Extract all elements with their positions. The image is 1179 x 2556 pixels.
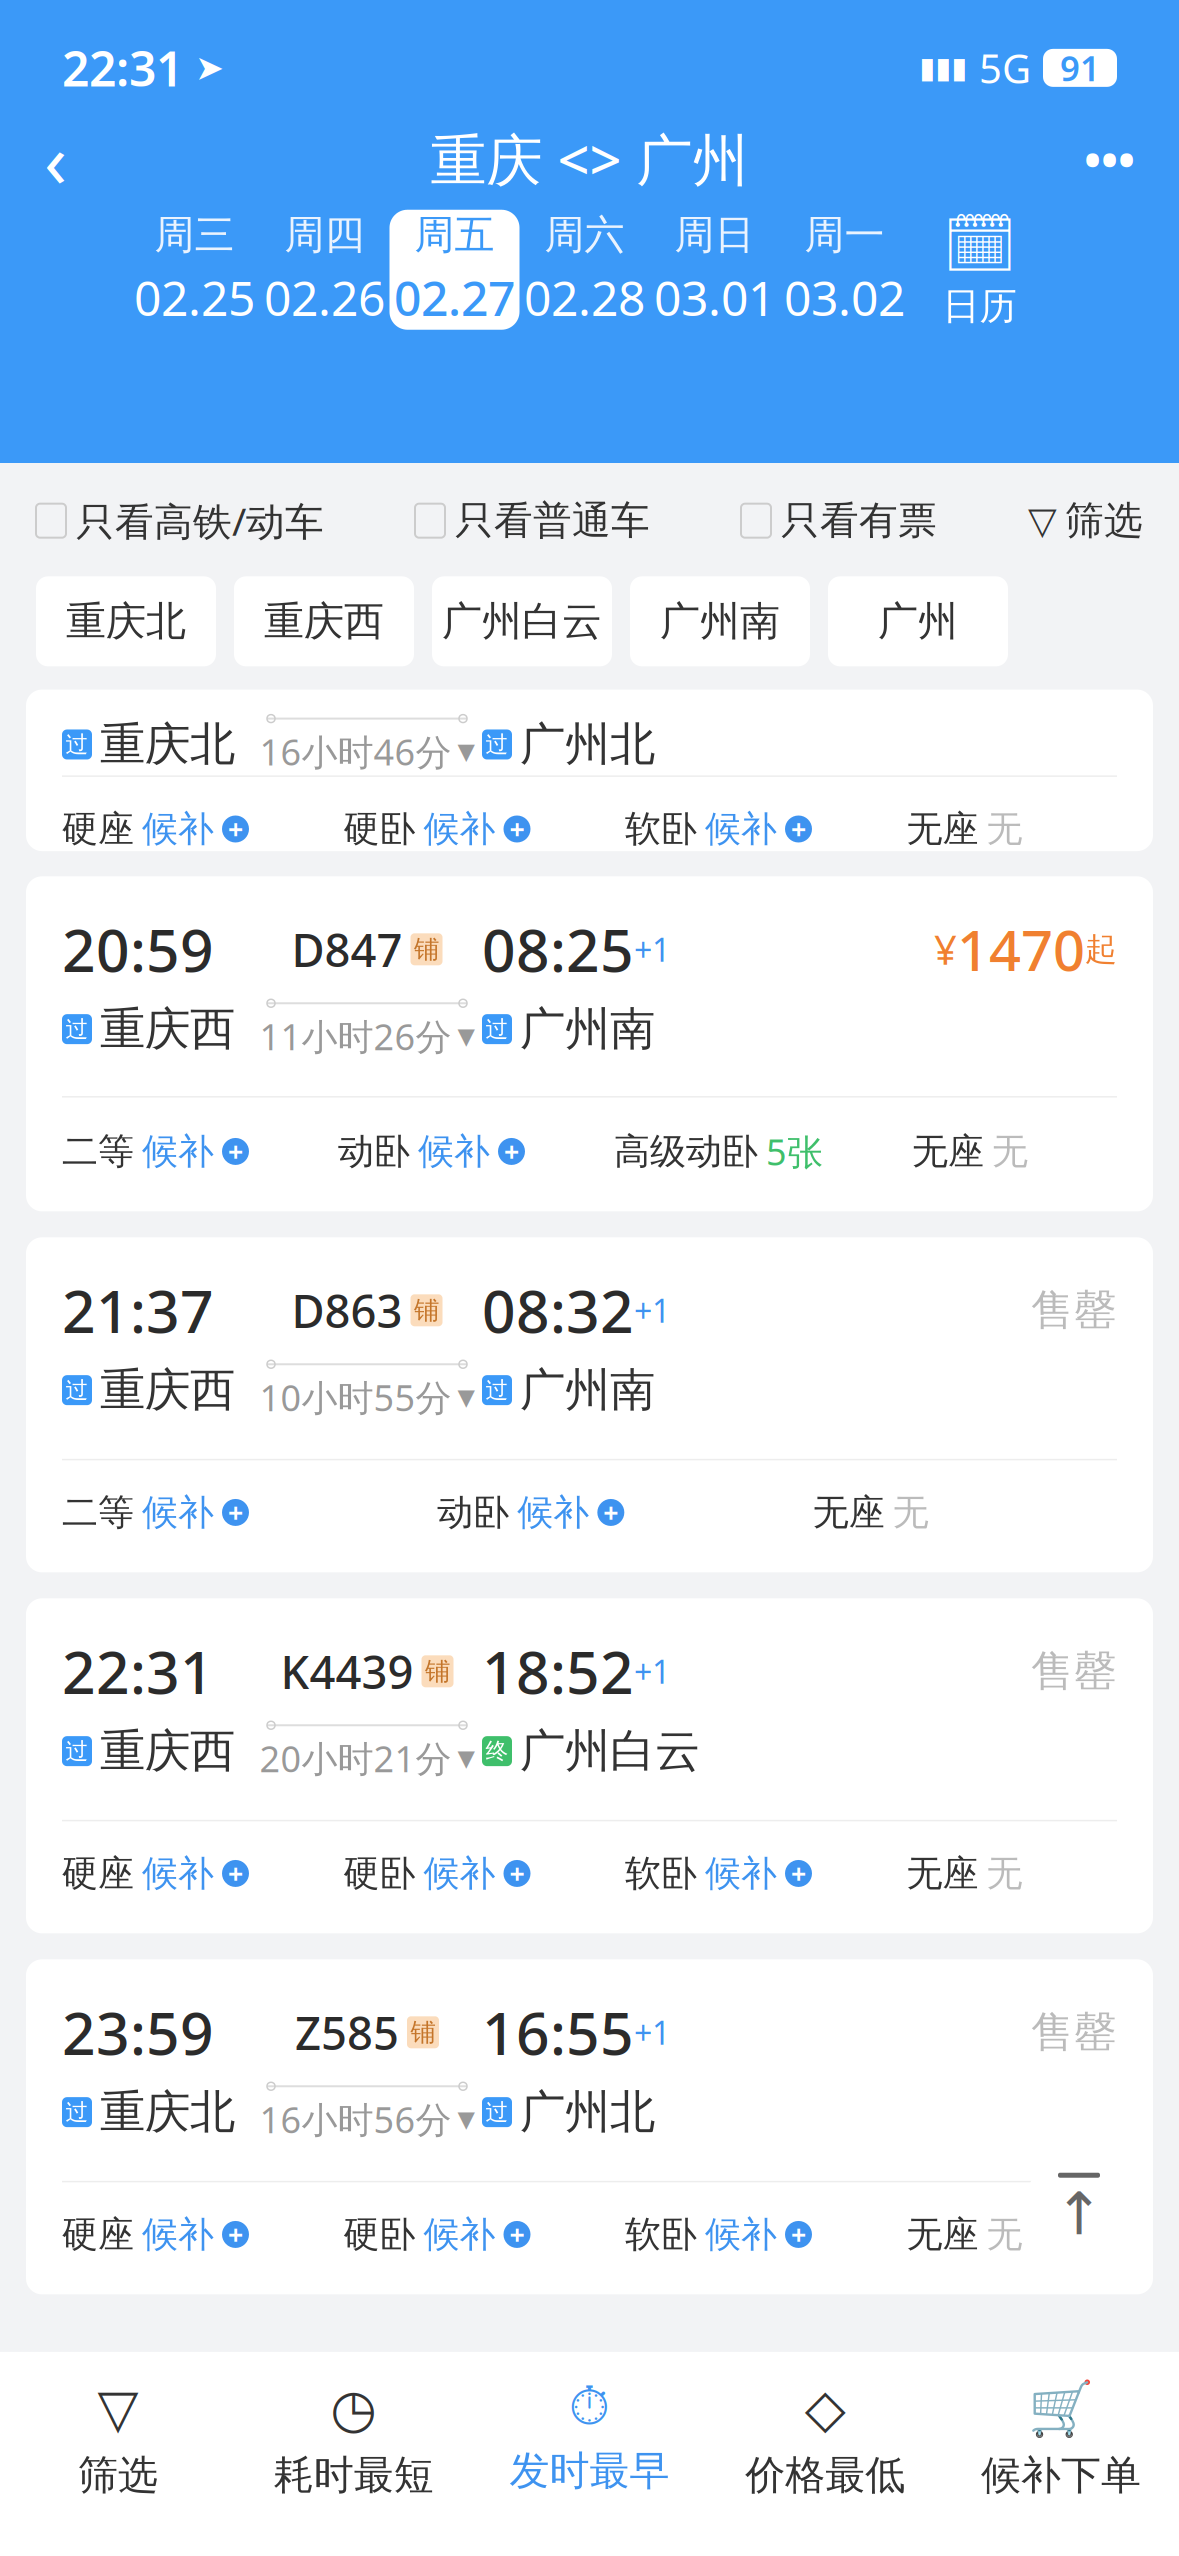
staticText: 02.28 — [524, 265, 645, 329]
staticText: 过 — [65, 2098, 88, 2126]
button[interactable]: 22:31 — [26, 1598, 1153, 1933]
staticText: 无座 — [906, 1851, 978, 1895]
button[interactable]: 软卧 — [625, 807, 812, 851]
staticText: 广州 — [878, 597, 958, 646]
button[interactable]: 动卧 — [338, 1129, 525, 1173]
button[interactable]: 硬座 — [62, 807, 249, 851]
staticText: 22:31 — [62, 36, 183, 100]
button[interactable]: 广州 — [828, 576, 1008, 666]
staticText: 动卧 — [437, 1490, 509, 1534]
button[interactable]: 硬卧 — [343, 2212, 530, 2256]
button[interactable]: 周五 — [389, 210, 519, 330]
button[interactable]: 周六 — [519, 210, 649, 330]
button[interactable]: 过 — [26, 690, 1153, 851]
staticText: 02.26 — [264, 265, 385, 329]
button[interactable]: ▽ — [1028, 497, 1143, 544]
staticText: 无座 — [912, 1129, 984, 1173]
staticText: 起 — [1085, 930, 1117, 969]
staticText: 16:55 — [482, 1993, 634, 2071]
staticText: +1 — [634, 1650, 670, 1693]
staticText: 只看有票 — [781, 497, 937, 544]
staticText: ¥ — [934, 923, 957, 976]
button[interactable]: 硬卧 — [343, 1851, 530, 1895]
staticText: 售罄 — [1031, 2006, 1117, 2058]
staticText: 硬卧 — [343, 2212, 415, 2256]
staticText: 价格最低 — [745, 2451, 905, 2500]
staticText: ↑ — [1054, 2181, 1103, 2247]
staticText: ➤ — [195, 48, 224, 87]
staticText: ▽ — [1028, 499, 1057, 542]
button[interactable]: 硬座 — [62, 2212, 249, 2256]
button[interactable]: 动卧 — [437, 1490, 624, 1534]
staticText: 08:32 — [482, 1271, 634, 1349]
button[interactable]: 二等 — [62, 1490, 249, 1534]
staticText: 候补 — [705, 2212, 777, 2256]
staticText: 03.02 — [784, 265, 905, 329]
staticText: 只看普通车 — [455, 497, 650, 544]
button[interactable]: Scroll to top — [1023, 2154, 1135, 2266]
button[interactable]: ▽ — [0, 2378, 236, 2500]
button[interactable]: 20:59 — [26, 876, 1153, 1211]
staticText: ◇ — [805, 2378, 846, 2439]
button[interactable]: 二等 — [62, 1129, 249, 1173]
button[interactable]: 硬座 — [62, 1851, 249, 1895]
button[interactable]: 🛒 — [943, 2378, 1179, 2500]
button[interactable]: 🗓 — [909, 210, 1049, 330]
button[interactable]: 高级动卧 — [614, 1128, 823, 1175]
staticText: 过 — [485, 1376, 508, 1404]
staticText: 硬卧 — [343, 807, 415, 851]
button[interactable]: 重庆北 — [36, 576, 216, 666]
staticText: 终 — [485, 1737, 508, 1765]
staticText: ‹ — [44, 109, 67, 208]
button[interactable]: 广州南 — [630, 576, 810, 666]
staticText: 高级动卧 — [614, 1129, 758, 1173]
button[interactable]: 软卧 — [625, 1851, 812, 1895]
button[interactable]: 周三 — [129, 210, 259, 330]
staticText: 02.27 — [394, 265, 515, 329]
staticText: 过 — [485, 2098, 508, 2126]
staticText: ••• — [1084, 129, 1135, 189]
staticText: 硬座 — [62, 807, 134, 851]
staticText: 硬座 — [62, 1851, 134, 1895]
staticText: 过 — [65, 1737, 88, 1765]
button[interactable]: 只看普通车 — [415, 497, 650, 544]
staticText: 铺 — [425, 1656, 450, 1687]
button[interactable]: 无座 — [912, 1129, 1028, 1173]
button[interactable]: More — [1045, 114, 1135, 204]
staticText: 耗时最短 — [274, 2451, 434, 2500]
button[interactable]: 周日 — [649, 210, 779, 330]
staticText: 周四 — [284, 210, 364, 259]
staticText: 铺 — [414, 934, 439, 965]
button[interactable]: 23:59 — [26, 1959, 1153, 2294]
button[interactable]: 广州白云 — [432, 576, 612, 666]
staticText: + — [504, 1134, 519, 1169]
staticText: 发时最早 — [509, 2446, 669, 2495]
button[interactable]: 周四 — [259, 210, 389, 330]
button[interactable]: 无座 — [813, 1490, 929, 1534]
staticText: 广州南 — [520, 1362, 655, 1418]
button[interactable]: Back — [44, 114, 134, 204]
button[interactable]: ◷ — [236, 2378, 472, 2500]
button[interactable]: 无座 — [906, 2212, 1022, 2256]
button[interactable]: 重庆西 — [234, 576, 414, 666]
button[interactable]: 21:37 — [26, 1237, 1153, 1572]
staticText: 软卧 — [625, 807, 697, 851]
staticText: 无座 — [906, 2212, 978, 2256]
button[interactable]: 只看有票 — [741, 497, 937, 544]
button[interactable]: ⏱ — [472, 2382, 707, 2495]
button[interactable]: 软卧 — [625, 2212, 812, 2256]
button[interactable]: 周一 — [779, 210, 909, 330]
staticText: 无 — [986, 1851, 1022, 1895]
button[interactable]: 无座 — [906, 807, 1022, 851]
button[interactable]: 无座 — [906, 1851, 1022, 1895]
staticText: 周六 — [544, 210, 624, 259]
staticText: + — [791, 811, 806, 847]
staticText: 20:59 — [62, 910, 214, 988]
staticText: 无 — [986, 807, 1022, 851]
staticText: 5张 — [766, 1128, 823, 1175]
button[interactable]: 只看高铁/动车 — [36, 495, 324, 546]
button[interactable]: ◇ — [707, 2378, 943, 2500]
staticText: ▽ — [97, 2378, 138, 2439]
staticText: 候补 — [142, 2212, 214, 2256]
button[interactable]: 硬卧 — [343, 807, 530, 851]
